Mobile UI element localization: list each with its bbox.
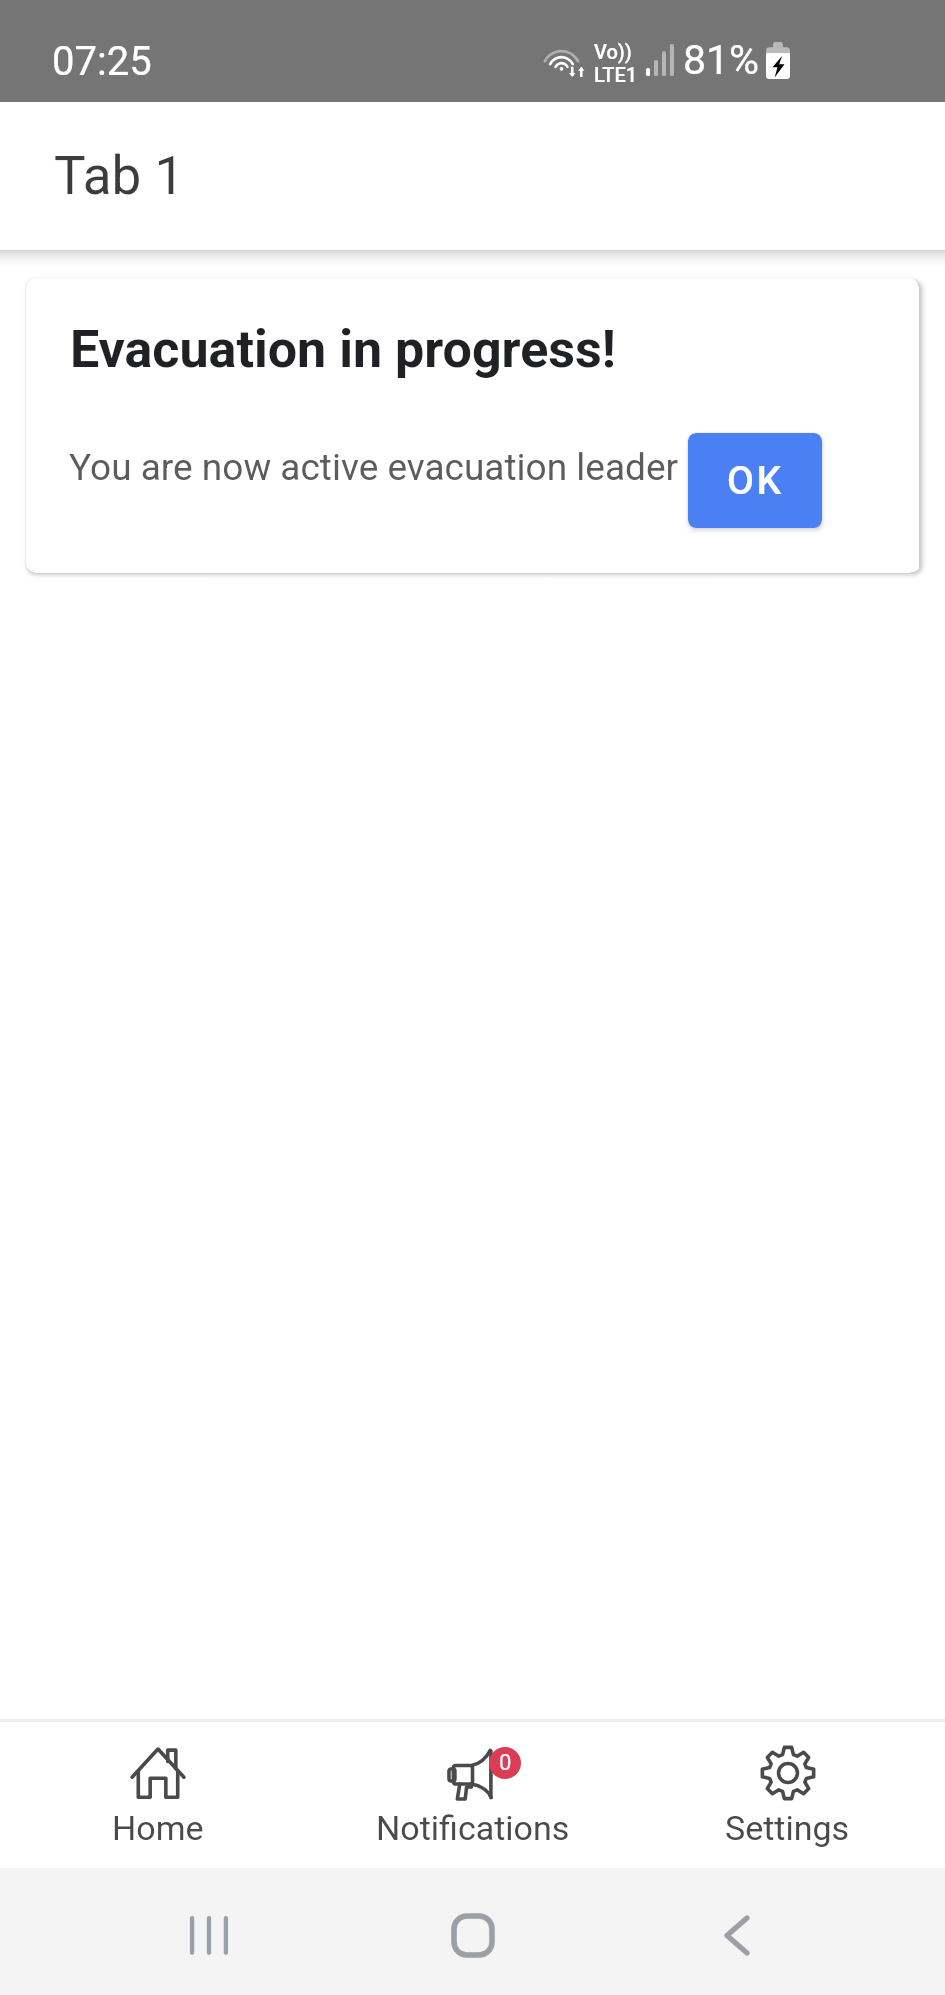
- staticText: Settings: [725, 1808, 850, 1848]
- staticText: 07:25: [52, 38, 152, 85]
- staticText: Vo)): [594, 40, 632, 63]
- staticText: OK: [727, 458, 784, 504]
- button[interactable]: Home: [407, 1885, 539, 1985]
- button[interactable]: OK: [688, 433, 822, 528]
- button[interactable]: Back: [671, 1885, 803, 1985]
- button[interactable]: Home: [0, 1722, 315, 1868]
- staticText: Notifications: [376, 1808, 570, 1848]
- button[interactable]: Recent apps: [143, 1885, 275, 1985]
- staticText: Evacuation in progress!: [70, 319, 616, 380]
- button[interactable]: 0: [315, 1722, 630, 1868]
- staticText: Tab 1: [54, 145, 185, 207]
- staticText: 81%: [683, 36, 760, 84]
- staticText: 0: [499, 1750, 512, 1776]
- staticText: You are now active evacuation leader: [69, 446, 679, 489]
- button[interactable]: Settings: [630, 1722, 945, 1868]
- staticText: LTE1: [594, 63, 638, 86]
- staticText: Home: [112, 1808, 204, 1848]
